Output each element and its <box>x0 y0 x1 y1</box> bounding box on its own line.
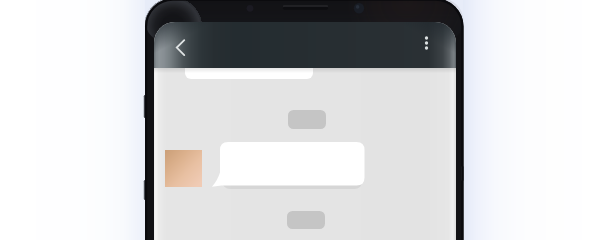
button[interactable]: Profile photo <box>165 150 202 187</box>
button[interactable] <box>185 60 313 79</box>
button[interactable] <box>287 211 325 229</box>
button[interactable]: Back <box>164 38 188 62</box>
button[interactable]: More options <box>415 33 439 57</box>
button[interactable] <box>288 110 326 129</box>
button[interactable] <box>212 140 372 192</box>
